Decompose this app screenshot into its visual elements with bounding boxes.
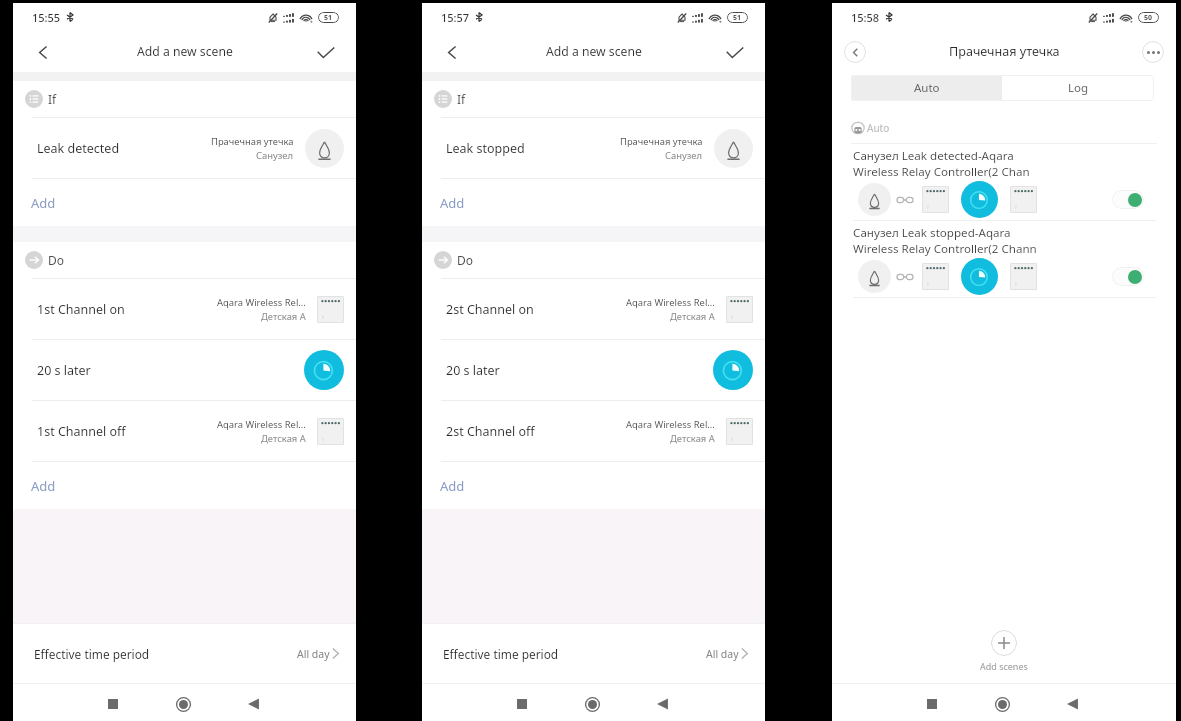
button[interactable]: Add: [13, 462, 356, 509]
staticText: 51: [733, 13, 742, 23]
button[interactable]: Back: [1037, 684, 1107, 721]
button[interactable]: Home: [148, 684, 218, 721]
staticText: Aqara Wireless Rel...: [217, 296, 306, 309]
button[interactable]: Log: [1002, 75, 1154, 101]
staticText: Add: [440, 477, 465, 495]
button[interactable]: 1st Channel on: [13, 279, 356, 339]
button[interactable]: 20 s later: [422, 340, 765, 400]
staticText: 15:58: [851, 10, 880, 25]
staticText: Auto: [867, 121, 890, 135]
button[interactable]: 20 s later: [13, 340, 356, 400]
button[interactable]: Back: [844, 41, 866, 63]
staticText: Add a new scene: [137, 43, 233, 60]
button[interactable]: Санузел Leak detected-Aqara Wireless Rel…: [832, 144, 1176, 221]
button[interactable]: Confirm: [306, 32, 346, 72]
staticText: 20 s later: [446, 362, 500, 379]
staticText: Прачечная утечка: [211, 135, 294, 148]
button[interactable]: Confirm: [715, 32, 755, 72]
staticText: Детская А: [670, 310, 715, 323]
staticText: All day: [297, 647, 330, 661]
staticText: Add scenes: [980, 660, 1028, 672]
staticText: Effective time period: [34, 646, 150, 662]
button[interactable]: Recents: [897, 684, 967, 721]
staticText: 2st Channel off: [446, 423, 535, 440]
staticText: 50: [1144, 13, 1153, 23]
button[interactable]: 2st Channel on: [422, 279, 765, 339]
staticText: 15:57: [441, 10, 470, 25]
button[interactable]: Toggle scene: [1112, 190, 1144, 209]
button[interactable]: Add: [13, 179, 356, 226]
staticText: Детская А: [261, 432, 306, 445]
button[interactable]: Leak detected: [13, 118, 356, 178]
staticText: Прачечная утечка: [949, 43, 1060, 60]
button[interactable]: Effective time period: [422, 624, 765, 683]
staticText: Детская А: [670, 432, 715, 445]
staticText: Log: [1068, 80, 1089, 96]
button[interactable]: Toggle scene: [1112, 267, 1144, 286]
staticText: 2st Channel on: [446, 301, 534, 318]
button[interactable]: Back: [627, 684, 697, 721]
staticText: Effective time period: [443, 646, 559, 662]
staticText: Детская А: [261, 310, 306, 323]
staticText: Aqara Wireless Rel...: [626, 418, 715, 431]
staticText: Add: [31, 194, 56, 212]
button[interactable]: 1st Channel off: [13, 401, 356, 461]
staticText: Санузел: [665, 149, 703, 162]
staticText: If: [48, 91, 57, 107]
staticText: Do: [457, 252, 474, 268]
button[interactable]: Recents: [78, 684, 148, 721]
staticText: Aqara Wireless Rel...: [626, 296, 715, 309]
staticText: Add: [440, 194, 465, 212]
staticText: Санузел: [256, 149, 294, 162]
staticText: If: [457, 91, 466, 107]
button[interactable]: Back: [23, 32, 63, 72]
staticText: 1st Channel off: [37, 423, 126, 440]
staticText: 15:55: [32, 10, 61, 25]
staticText: Прачечная утечка: [620, 135, 703, 148]
button[interactable]: Home: [967, 684, 1037, 721]
staticText: 20 s later: [37, 362, 91, 379]
button[interactable]: Home: [557, 684, 627, 721]
staticText: Auto: [914, 80, 940, 96]
button[interactable]: Effective time period: [13, 624, 356, 683]
button[interactable]: Back: [218, 684, 288, 721]
button[interactable]: Recents: [487, 684, 557, 721]
button[interactable]: Back: [432, 32, 472, 72]
button[interactable]: Санузел Leak stopped-Aqara Wireless Rela…: [832, 221, 1176, 298]
button[interactable]: More options: [1142, 41, 1164, 63]
staticText: All day: [706, 647, 739, 661]
button[interactable]: Add scenes: [980, 630, 1028, 672]
button[interactable]: 2st Channel off: [422, 401, 765, 461]
staticText: Add: [31, 477, 56, 495]
button[interactable]: Auto: [851, 75, 1002, 101]
button[interactable]: Add: [422, 462, 765, 509]
staticText: 1st Channel on: [37, 301, 125, 318]
staticText: Leak detected: [37, 140, 120, 157]
staticText: Санузел Leak detected-Aqara Wireless Rel…: [853, 148, 1030, 179]
staticText: Aqara Wireless Rel...: [217, 418, 306, 431]
staticText: Do: [48, 252, 65, 268]
button[interactable]: Leak stopped: [422, 118, 765, 178]
staticText: Add a new scene: [546, 43, 642, 60]
staticText: 51: [324, 13, 333, 23]
button[interactable]: Add: [422, 179, 765, 226]
staticText: Санузел Leak stopped-Aqara Wireless Rela…: [853, 225, 1037, 256]
staticText: Leak stopped: [446, 140, 525, 157]
